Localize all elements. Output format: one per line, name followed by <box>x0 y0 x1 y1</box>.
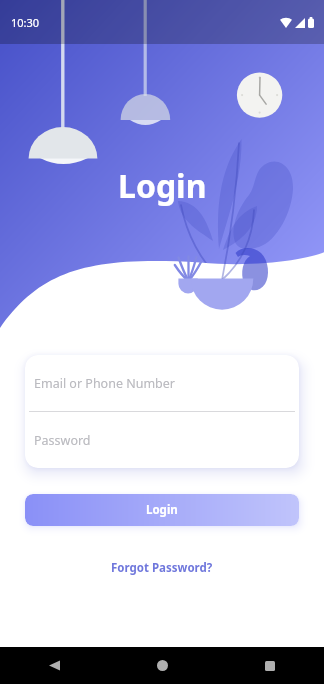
staticText: Email or Phone Number <box>34 375 176 392</box>
button[interactable]: Login <box>25 494 299 526</box>
staticText: Forgot Password? <box>111 560 213 576</box>
button[interactable]: Password <box>25 412 299 468</box>
button[interactable]: Email or Phone Number <box>25 355 299 412</box>
button[interactable]: Recent apps <box>251 647 289 684</box>
staticText: Login <box>118 164 207 208</box>
button[interactable]: Back <box>35 647 73 684</box>
staticText: 10:30 <box>11 15 40 30</box>
button[interactable]: Forgot Password? <box>105 554 219 582</box>
staticText: Password <box>34 432 91 449</box>
button[interactable]: Home <box>143 647 181 684</box>
staticText: Login <box>146 502 178 518</box>
